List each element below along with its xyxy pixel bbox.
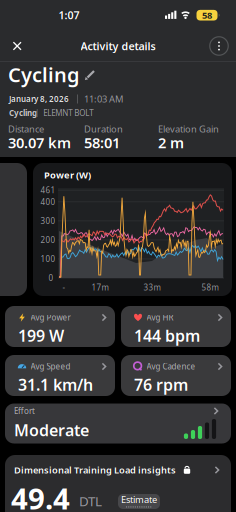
staticText: 300: [40, 215, 55, 226]
button[interactable]: Avg HR: [121, 306, 231, 347]
button[interactable]: Estimate: [116, 491, 162, 511]
staticText: 2 m: [158, 133, 184, 152]
staticText: Dimensional Training Load insights: [14, 464, 176, 476]
button[interactable]: Edit title: [82, 67, 96, 81]
button[interactable]: Dimensional Training Load insights: [5, 457, 231, 483]
staticText: Avg HR: [146, 312, 173, 323]
button[interactable]: Avg Power: [5, 306, 115, 347]
staticText: 58m: [201, 282, 218, 293]
staticText: 400: [40, 196, 55, 207]
staticText: Cycling: [9, 108, 37, 118]
staticText: 11:03 AM: [84, 93, 123, 105]
staticText: Effort: [14, 406, 35, 416]
staticText: Avg Speed: [30, 361, 70, 372]
staticText: 100: [40, 254, 55, 264]
staticText: Elevation Gain: [158, 123, 219, 135]
staticText: Power (W): [44, 169, 91, 181]
button[interactable]: Avg Cadence: [121, 355, 231, 396]
staticText: 199 W: [18, 325, 64, 346]
staticText: Estimate: [121, 493, 157, 506]
staticText: 49.4: [11, 478, 70, 512]
staticText: 58: [202, 9, 212, 21]
staticText: 30.07 km: [8, 133, 71, 152]
button[interactable]: Avg Speed: [5, 355, 115, 396]
staticText: 0: [48, 273, 53, 283]
staticText: Moderate: [14, 419, 89, 441]
staticText: 144 bpm: [134, 325, 200, 346]
staticText: DTL: [79, 492, 102, 510]
staticText: 1:07: [58, 8, 79, 22]
staticText: Distance: [8, 123, 44, 135]
staticText: 17m: [91, 282, 108, 293]
staticText: Avg Cadence: [146, 361, 195, 372]
staticText: 33m: [143, 282, 160, 293]
staticText: Avg Power: [30, 312, 70, 323]
staticText: -: [62, 282, 65, 293]
button[interactable]: More options: [208, 35, 230, 57]
staticText: ELEMNT BOLT: [43, 108, 93, 118]
button[interactable]: Effort: [5, 403, 231, 443]
staticText: January 8, 2026: [9, 94, 69, 104]
staticText: 461: [40, 185, 55, 195]
staticText: 58:01: [84, 133, 120, 152]
staticText: 76 rpm: [134, 374, 188, 395]
staticText: Activity details: [80, 39, 155, 53]
button[interactable]: Close: [5, 34, 29, 58]
staticText: Duration: [84, 123, 123, 135]
staticText: 200: [40, 235, 55, 245]
staticText: 31.1 km/h: [18, 374, 93, 395]
staticText: Cycling: [8, 61, 80, 88]
